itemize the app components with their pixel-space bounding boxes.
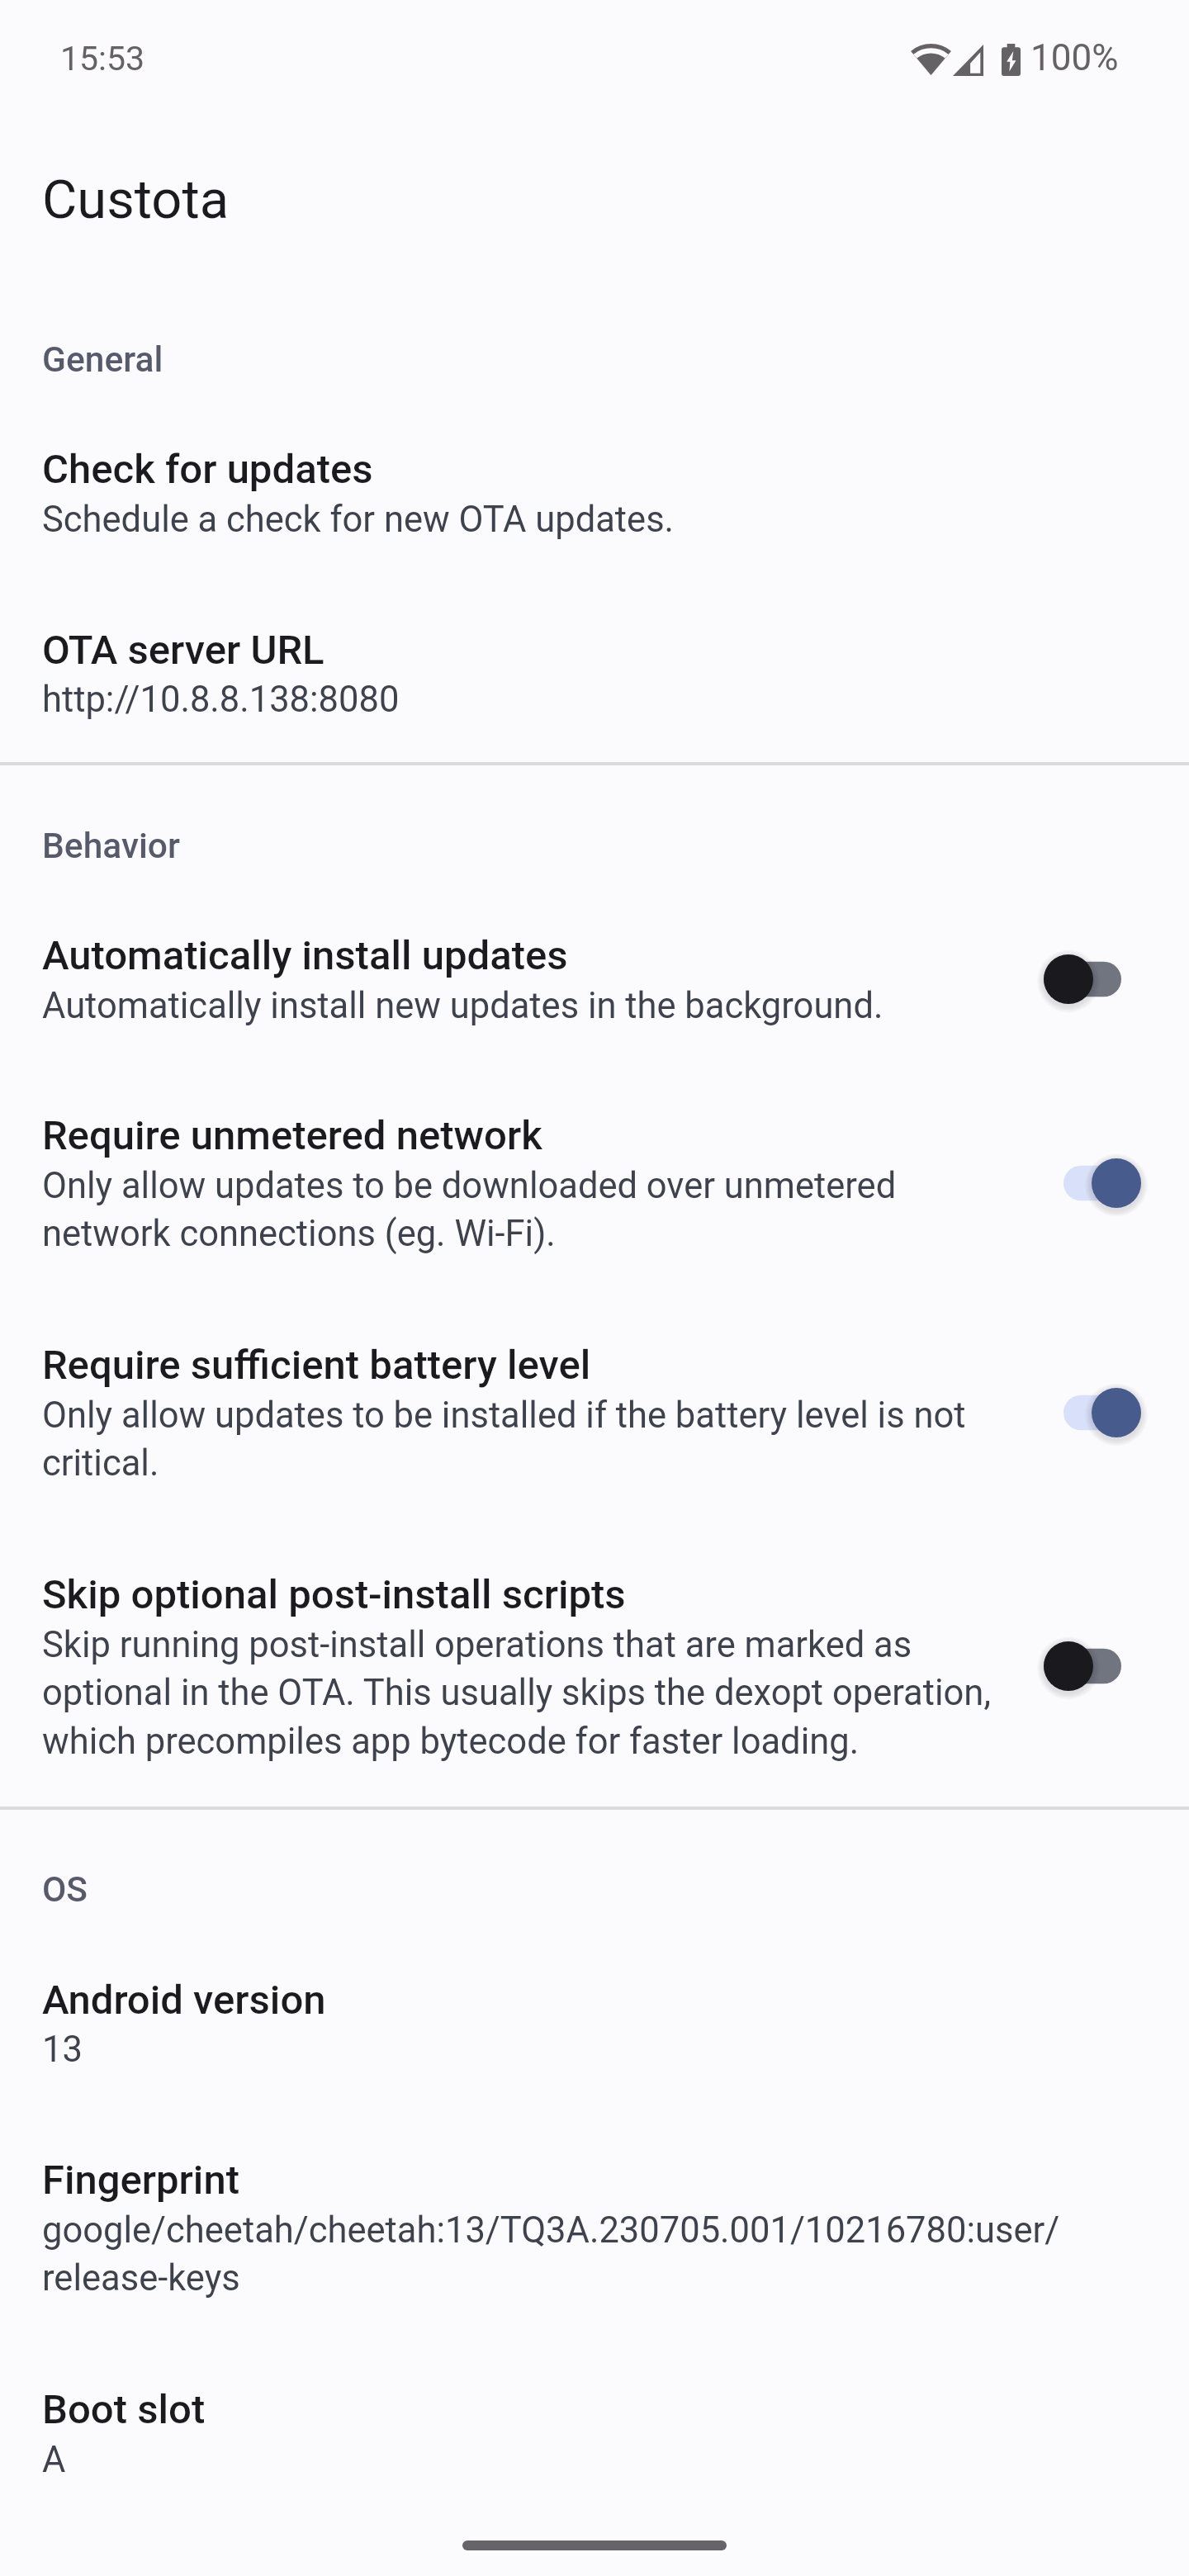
- staticText: Fingerprint: [42, 2157, 239, 2204]
- button[interactable]: Setting enabled, toggle off: [1045, 1140, 1159, 1226]
- staticText: Behavior: [42, 826, 180, 867]
- staticText: google/cheetah/cheetah:13/TQ3A.230705.00…: [42, 2209, 1060, 2252]
- staticText: 15:53: [60, 39, 145, 78]
- button[interactable]: [0, 930, 1189, 1030]
- staticText: release-keys: [42, 2257, 240, 2299]
- button[interactable]: [0, 1570, 1189, 1766]
- staticText: 13: [42, 2029, 83, 2071]
- staticText: http://10.8.8.138:8080: [42, 679, 400, 721]
- staticText: OS: [42, 1869, 88, 1911]
- staticText: General: [42, 339, 163, 381]
- staticText: which precompiles app bytecode for faste…: [42, 1721, 860, 1763]
- button[interactable]: Setting disabled, toggle on: [1026, 1623, 1139, 1709]
- staticText: Boot slot: [42, 2386, 206, 2433]
- button[interactable]: Setting disabled, toggle on: [1026, 936, 1139, 1022]
- staticText: Schedule a check for new OTA updates.: [42, 499, 675, 541]
- staticText: OTA server URL: [42, 627, 324, 674]
- staticText: Skip running post-install operations tha…: [42, 1624, 912, 1666]
- staticText: network connections (eg. Wi-Fi).: [42, 1213, 556, 1255]
- staticText: Check for updates: [42, 446, 373, 493]
- button[interactable]: Setting enabled, toggle off: [1045, 1370, 1159, 1456]
- button[interactable]: [0, 624, 1189, 724]
- button[interactable]: [0, 2384, 1189, 2484]
- staticText: critical.: [42, 1442, 159, 1485]
- button[interactable]: [0, 1110, 1189, 1258]
- staticText: Automatically install new updates in the…: [42, 985, 883, 1027]
- button[interactable]: [0, 444, 1189, 544]
- other: Battery charging: [1002, 44, 1021, 76]
- button[interactable]: [0, 2155, 1189, 2303]
- staticText: Require sufficient battery level: [42, 1342, 591, 1389]
- staticText: Only allow updates to be installed if th…: [42, 1395, 966, 1437]
- staticText: Android version: [42, 1977, 326, 2024]
- staticText: 100%: [1030, 36, 1119, 79]
- button[interactable]: [0, 1974, 1189, 2074]
- staticText: Require unmetered network: [42, 1112, 542, 1159]
- button[interactable]: [0, 1340, 1189, 1488]
- staticText: Custota: [42, 168, 230, 231]
- other: Mobile signal: [953, 45, 983, 76]
- staticText: Only allow updates to be downloaded over…: [42, 1165, 897, 1207]
- other: Wi-Fi signal full: [912, 44, 950, 75]
- staticText: Automatically install updates: [42, 932, 568, 979]
- staticText: A: [42, 2439, 66, 2481]
- staticText: Skip optional post-install scripts: [42, 1571, 626, 1618]
- staticText: optional in the OTA. This usually skips …: [42, 1672, 991, 1714]
